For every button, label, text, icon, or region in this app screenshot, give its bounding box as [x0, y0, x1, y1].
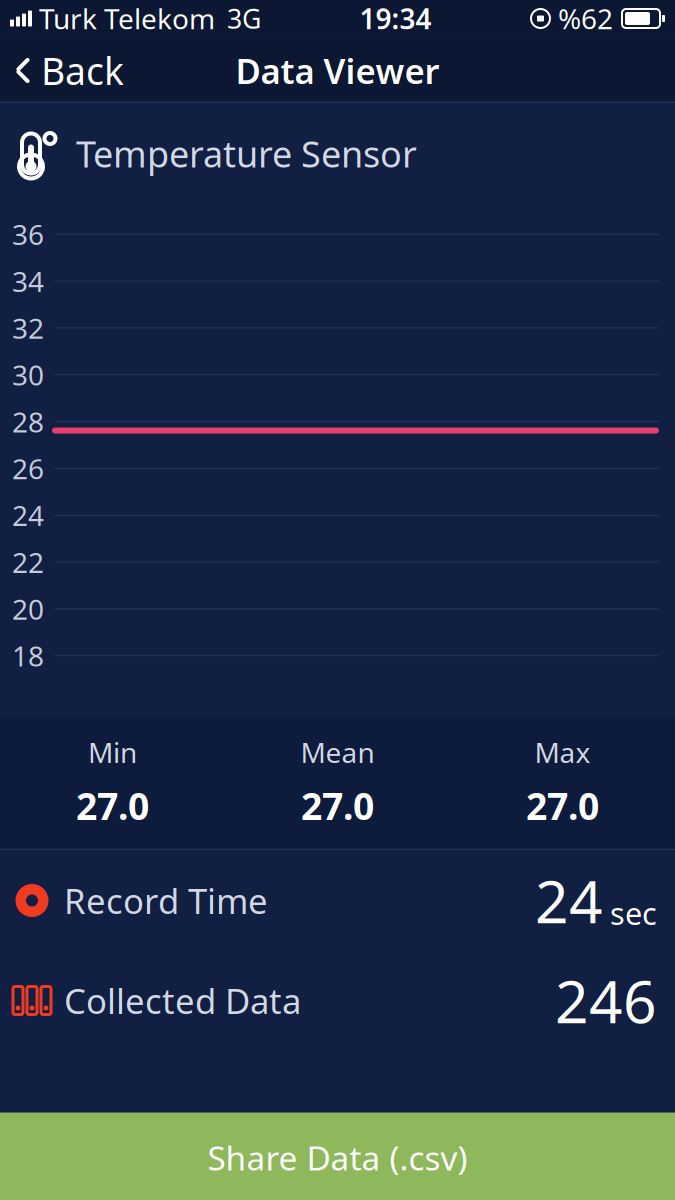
staticText: 3G — [227, 1, 261, 36]
staticText: 27.0 — [301, 781, 374, 830]
staticText: Turk Telekom — [39, 0, 215, 37]
staticText: Back — [41, 46, 124, 95]
staticText: Max — [534, 734, 590, 771]
staticText: 26 — [12, 450, 44, 487]
staticText: 36 — [12, 216, 44, 253]
staticText: 18 — [12, 637, 44, 674]
button[interactable]: Collected Data — [0, 950, 675, 1050]
staticText: Temperature Sensor — [76, 130, 417, 177]
staticText: 27.0 — [526, 781, 599, 830]
staticText: %62 — [558, 0, 613, 37]
staticText: Data Viewer — [235, 47, 439, 93]
staticText: 27.0 — [76, 781, 149, 830]
button[interactable]: Share Data (.csv) — [0, 1112, 675, 1200]
staticText: Share Data (.csv) — [207, 1135, 467, 1180]
staticText: Record Time — [64, 877, 268, 923]
staticText: sec — [610, 893, 657, 933]
staticText: 22 — [12, 543, 44, 581]
staticText: 30 — [12, 356, 44, 393]
staticText: Collected Data — [64, 977, 301, 1023]
button[interactable]: Record Time — [0, 850, 675, 950]
staticText: 28 — [12, 403, 44, 440]
staticText: 246 — [555, 961, 657, 1039]
staticText: 24 — [535, 861, 603, 939]
staticText: 34 — [12, 262, 44, 300]
staticText: 24 — [12, 497, 44, 534]
staticText: 32 — [12, 309, 44, 346]
staticText: Min — [88, 734, 137, 771]
staticText: 20 — [12, 590, 44, 627]
button[interactable]: Back — [0, 39, 138, 101]
staticText: 19:34 — [359, 0, 431, 37]
staticText: Mean — [300, 734, 374, 771]
